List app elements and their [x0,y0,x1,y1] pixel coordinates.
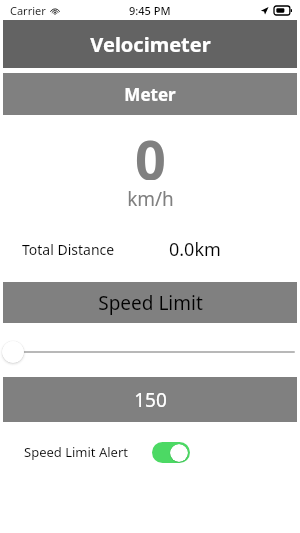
button[interactable]: 150 [3,377,297,422]
staticText: Speed Limit Alert [24,443,128,461]
button[interactable]: Speed Limit [3,282,297,323]
staticText: km/h [127,186,174,212]
button[interactable]: Meter [3,73,297,115]
button[interactable]: Velocimeter [3,20,297,68]
staticText: Total Distance [22,240,115,259]
staticText: Speed Limit [98,290,203,316]
staticText: Meter [124,83,176,106]
staticText: Carrier [10,3,46,18]
staticText: 9:45 PM [129,3,171,18]
staticText: 150 [134,387,167,413]
staticText: Velocimeter [90,31,211,58]
button[interactable]: Speed Limit Alert toggle, on [152,442,190,463]
button[interactable]: Speed limit slider [0,340,300,364]
staticText: 0.0km [169,237,221,262]
staticText: 0 [135,122,166,180]
